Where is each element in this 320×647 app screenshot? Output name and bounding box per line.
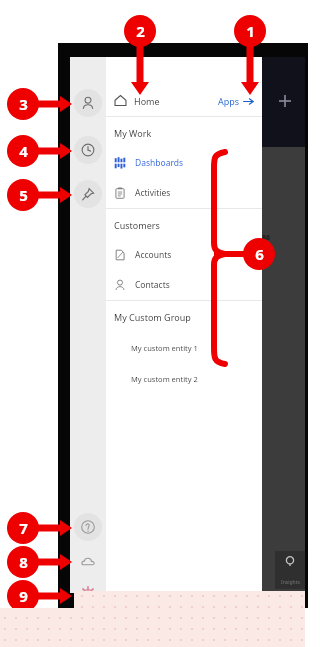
staticText: 3 <box>19 94 28 114</box>
staticText: 1 <box>246 21 255 41</box>
staticText: 8 <box>19 552 28 572</box>
staticText: Insights <box>281 579 300 586</box>
button[interactable]: Apps <box>212 89 262 116</box>
staticText: Home <box>134 95 160 107</box>
button[interactable]: Activities <box>106 178 262 208</box>
button[interactable]: Help <box>74 513 102 541</box>
button[interactable]: My custom entity 1 <box>106 332 262 363</box>
staticText: My Custom Group <box>114 311 191 323</box>
staticText: Customers <box>114 219 160 231</box>
staticText: My custom entity 1 <box>131 343 198 353</box>
staticText: 9 <box>19 586 28 606</box>
staticText: My custom entity 2 <box>131 374 198 384</box>
button[interactable]: Pinned <box>74 180 102 208</box>
staticText: Accounts <box>135 249 172 261</box>
button[interactable]: Recently viewed <box>74 136 102 164</box>
staticText: Apps <box>218 95 240 107</box>
staticText: Dashboards <box>135 157 184 169</box>
staticText: Contacts <box>135 279 170 291</box>
button[interactable]: Settings <box>74 580 102 608</box>
staticText: 5 <box>19 185 28 205</box>
other: New record <box>278 94 292 108</box>
button[interactable]: My custom entity 2 <box>106 363 262 394</box>
staticText: Activities <box>135 187 171 199</box>
button[interactable]: Home <box>106 88 166 116</box>
staticText: My Work <box>114 127 152 139</box>
button[interactable]: Accounts <box>106 240 262 270</box>
staticText: 2 <box>136 21 145 41</box>
button[interactable]: Profile <box>74 89 102 117</box>
button[interactable]: Dashboards <box>106 148 262 178</box>
staticText: 86 <box>262 233 271 243</box>
staticText: 7 <box>19 518 28 538</box>
staticText: 4 <box>19 141 28 161</box>
button[interactable]: Cloud <box>74 548 102 576</box>
staticText: 6 <box>255 244 264 264</box>
button[interactable]: Contacts <box>106 270 262 300</box>
